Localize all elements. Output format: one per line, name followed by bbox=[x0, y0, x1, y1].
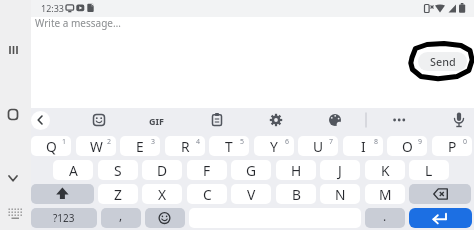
staticText: V bbox=[247, 185, 256, 204]
staticText: Q bbox=[46, 137, 57, 156]
staticText: U bbox=[313, 137, 324, 156]
button[interactable]: Y bbox=[254, 136, 294, 156]
button[interactable]: V bbox=[231, 184, 271, 204]
staticText: B bbox=[292, 185, 301, 204]
button[interactable]: D bbox=[142, 160, 182, 180]
button[interactable] bbox=[409, 184, 471, 204]
staticText: 8 bbox=[374, 137, 379, 147]
button[interactable]: W bbox=[76, 136, 116, 156]
staticText: K bbox=[381, 161, 390, 180]
staticText: H bbox=[291, 161, 302, 180]
staticText: A bbox=[69, 161, 78, 180]
button[interactable]: Z bbox=[98, 184, 138, 204]
staticText: T bbox=[225, 137, 233, 156]
staticText: , bbox=[119, 208, 123, 223]
staticText: J bbox=[338, 161, 342, 180]
staticText: P bbox=[448, 137, 457, 156]
staticText: . bbox=[383, 208, 387, 224]
button[interactable]: J bbox=[320, 160, 360, 180]
button[interactable]: E bbox=[120, 136, 160, 156]
staticText: Write a message… bbox=[35, 16, 121, 30]
staticText: I bbox=[361, 137, 366, 156]
button[interactable]: X bbox=[142, 184, 182, 204]
button[interactable]: I bbox=[343, 136, 383, 156]
staticText: 9 bbox=[418, 137, 423, 147]
staticText: 6 bbox=[285, 137, 290, 147]
staticText: 5 bbox=[240, 137, 245, 147]
button[interactable] bbox=[31, 184, 94, 204]
button[interactable] bbox=[31, 111, 50, 130]
staticText: O bbox=[402, 137, 413, 156]
button[interactable] bbox=[409, 208, 472, 228]
button[interactable]: T bbox=[209, 136, 249, 156]
staticText: S bbox=[114, 161, 122, 180]
staticText: Send bbox=[430, 54, 456, 69]
button[interactable]: P bbox=[432, 136, 472, 156]
button[interactable]: G bbox=[231, 160, 271, 180]
button[interactable]: Send bbox=[418, 52, 467, 71]
button[interactable]: N bbox=[320, 184, 360, 204]
button[interactable]: S bbox=[98, 160, 138, 180]
staticText: 1 bbox=[62, 137, 67, 147]
staticText: C bbox=[203, 185, 212, 204]
button[interactable]: L bbox=[409, 160, 449, 180]
staticText: Z bbox=[114, 185, 122, 204]
staticText: L bbox=[425, 161, 433, 180]
staticText: Y bbox=[270, 137, 278, 156]
staticText: W bbox=[90, 137, 103, 156]
button[interactable]: C bbox=[187, 184, 227, 204]
staticText: 2 bbox=[107, 137, 112, 147]
staticText: 7 bbox=[329, 137, 334, 147]
staticText: ?123 bbox=[53, 211, 75, 225]
button[interactable]: O bbox=[387, 136, 427, 156]
button[interactable] bbox=[145, 208, 185, 228]
staticText: 12:33 bbox=[41, 2, 65, 14]
staticText: X bbox=[158, 185, 167, 204]
button[interactable]: K bbox=[365, 160, 405, 180]
button[interactable]: GIF bbox=[149, 115, 164, 127]
button[interactable]: F bbox=[187, 160, 227, 180]
staticText: G bbox=[246, 161, 257, 180]
staticText: N bbox=[335, 185, 346, 204]
button[interactable]: Q bbox=[31, 136, 71, 156]
button[interactable]: A bbox=[53, 160, 93, 180]
staticText: F bbox=[203, 161, 211, 180]
button[interactable]: . bbox=[365, 208, 405, 228]
button[interactable]: M bbox=[365, 184, 405, 204]
staticText: R bbox=[181, 137, 190, 156]
button[interactable]: U bbox=[298, 136, 338, 156]
staticText: E bbox=[136, 137, 144, 156]
staticText: 3 bbox=[151, 137, 156, 147]
staticText: 0 bbox=[463, 137, 468, 147]
button[interactable]: ?123 bbox=[31, 208, 97, 228]
button[interactable]: H bbox=[276, 160, 316, 180]
button[interactable]: B bbox=[276, 184, 316, 204]
button[interactable]: , bbox=[101, 208, 141, 228]
staticText: D bbox=[157, 161, 168, 180]
staticText: M bbox=[379, 185, 392, 204]
staticText: 4 bbox=[196, 137, 201, 147]
button[interactable]: R bbox=[165, 136, 205, 156]
